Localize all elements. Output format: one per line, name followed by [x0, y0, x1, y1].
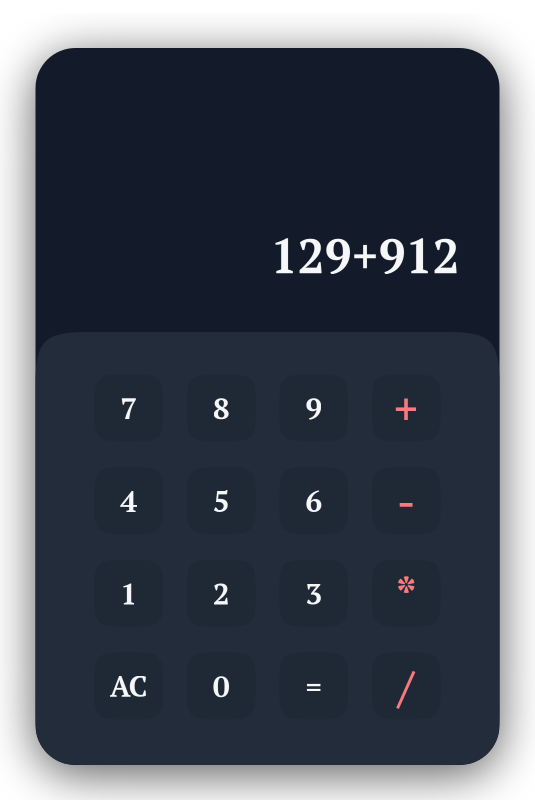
- button[interactable]: AC: [94, 652, 163, 719]
- staticText: 7: [120, 388, 137, 428]
- staticText: =: [305, 666, 322, 706]
- staticText: 5: [213, 481, 230, 520]
- staticText: 4: [120, 481, 137, 520]
- staticText: -: [397, 471, 416, 531]
- staticText: /: [398, 656, 414, 716]
- staticText: 129+912: [270, 223, 459, 287]
- button[interactable]: 0: [187, 652, 256, 719]
- staticText: 6: [305, 481, 322, 520]
- staticText: 3: [305, 573, 322, 613]
- button[interactable]: -: [372, 467, 441, 534]
- button[interactable]: *: [372, 560, 441, 627]
- button[interactable]: /: [372, 652, 441, 719]
- button[interactable]: 7: [94, 374, 163, 441]
- staticText: AC: [110, 667, 148, 705]
- button[interactable]: 8: [187, 374, 256, 441]
- button[interactable]: =: [279, 652, 348, 719]
- staticText: +: [393, 378, 419, 438]
- staticText: 8: [213, 388, 230, 428]
- staticText: 9: [305, 388, 322, 428]
- button[interactable]: +: [372, 374, 441, 441]
- staticText: 2: [213, 573, 230, 613]
- button[interactable]: 9: [279, 374, 348, 441]
- button[interactable]: 5: [187, 467, 256, 534]
- button[interactable]: 2: [187, 560, 256, 627]
- staticText: 1: [120, 573, 137, 613]
- button[interactable]: 3: [279, 560, 348, 627]
- button[interactable]: 6: [279, 467, 348, 534]
- staticText: *: [396, 563, 417, 623]
- button[interactable]: 1: [94, 560, 163, 627]
- staticText: 0: [213, 666, 230, 706]
- button[interactable]: 4: [94, 467, 163, 534]
